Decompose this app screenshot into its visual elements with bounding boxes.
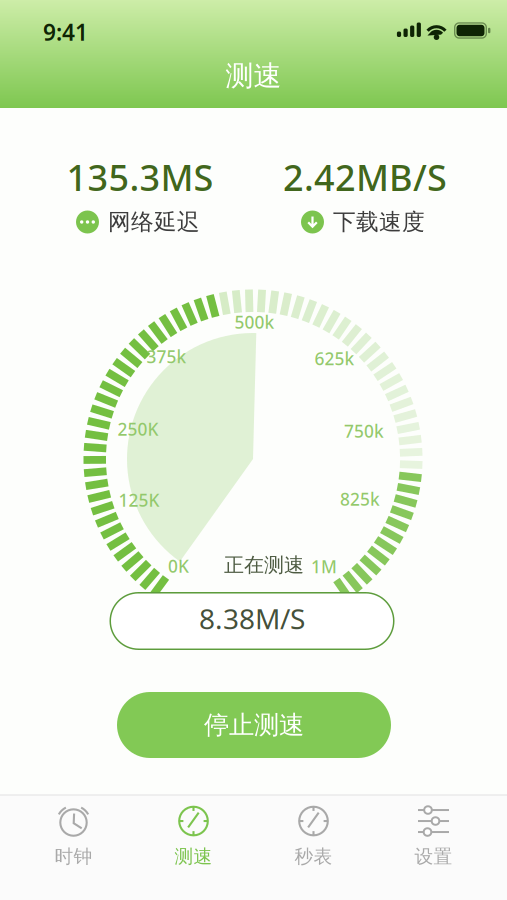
staticText: 设置 [414,845,452,868]
staticText: 125K [118,488,159,511]
staticText: 625k [314,347,354,370]
staticText: 测速 [225,59,281,93]
staticText: 1M [311,555,337,578]
staticText: 9:41 [43,17,88,47]
staticText: 375k [146,345,186,368]
staticText: 停止测速 [204,709,304,740]
staticText: 时钟 [54,845,92,868]
staticText: 下载速度 [333,208,425,236]
button[interactable]: 秒表 [253,802,373,868]
staticText: 测速 [174,845,212,868]
staticText: 500k [234,310,274,333]
button[interactable]: 设置 [373,802,493,868]
staticText: 825k [340,487,380,510]
button[interactable]: 时钟 [13,802,133,868]
staticText: 135.3MS [66,153,213,201]
staticText: 2.42MB/S [283,153,447,201]
staticText: 秒表 [294,845,332,868]
staticText: 750k [344,419,384,442]
staticText: 0K [168,554,189,577]
staticText: 正在测速 [224,553,304,577]
staticText: 8.38M/S [199,600,305,637]
staticText: 网络延迟 [108,208,200,236]
button[interactable]: 测速 [133,802,253,868]
staticText: 250K [117,417,158,440]
button[interactable]: 停止测速 [117,692,391,758]
